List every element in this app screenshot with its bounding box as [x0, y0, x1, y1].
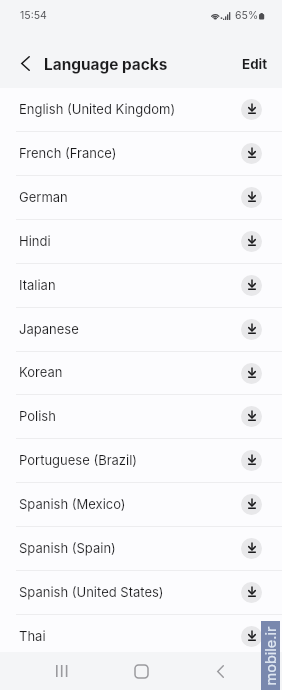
- staticText: Edit: [242, 56, 268, 72]
- staticText: Language packs: [44, 55, 168, 74]
- button[interactable]: Download Italian: [241, 275, 262, 296]
- button[interactable]: Spanish (Spain): [0, 527, 282, 570]
- staticText: Polish: [19, 408, 241, 424]
- button[interactable]: Download German: [241, 187, 262, 208]
- staticText: Hindi: [19, 233, 241, 249]
- button[interactable]: French (France): [0, 132, 282, 175]
- button[interactable]: Download Portuguese (Brazil): [241, 450, 262, 471]
- button[interactable]: Download Korean: [241, 363, 262, 384]
- button[interactable]: Download Spanish (Mexico): [241, 494, 262, 515]
- staticText: English (United Kingdom): [19, 101, 241, 117]
- button[interactable]: Download Thai: [241, 626, 262, 647]
- staticText: Spanish (Spain): [19, 540, 241, 556]
- staticText: Korean: [19, 364, 241, 380]
- button[interactable]: Download French (France): [241, 143, 262, 164]
- button[interactable]: Polish: [0, 395, 282, 438]
- button[interactable]: Korean: [0, 352, 282, 394]
- button[interactable]: Download Japanese: [241, 319, 262, 340]
- button[interactable]: Download Polish: [241, 406, 262, 427]
- button[interactable]: Spanish (United States): [0, 571, 282, 614]
- button[interactable]: Back: [200, 652, 240, 690]
- staticText: 65%: [235, 9, 259, 22]
- button[interactable]: Portuguese (Brazil): [0, 439, 282, 482]
- button[interactable]: Hindi: [0, 220, 282, 263]
- button[interactable]: Download English (United Kingdom): [241, 99, 262, 120]
- button[interactable]: Spanish (Mexico): [0, 483, 282, 526]
- button[interactable]: Thai: [0, 615, 282, 658]
- staticText: Portuguese (Brazil): [19, 452, 241, 468]
- button[interactable]: Edit: [228, 43, 282, 85]
- button[interactable]: German: [0, 176, 282, 219]
- button[interactable]: Home: [121, 652, 161, 690]
- staticText: German: [19, 189, 241, 205]
- button[interactable]: Japanese: [0, 308, 282, 351]
- staticText: mobile.ir: [261, 621, 279, 690]
- staticText: 15:54: [20, 9, 47, 22]
- staticText: French (France): [19, 145, 241, 161]
- staticText: Japanese: [19, 321, 241, 337]
- button[interactable]: Navigate up: [3, 42, 47, 84]
- button[interactable]: Download Spanish (United States): [241, 582, 262, 603]
- button[interactable]: Download Hindi: [241, 231, 262, 252]
- staticText: Italian: [19, 277, 241, 293]
- button[interactable]: English (United Kingdom): [0, 88, 282, 131]
- staticText: Spanish (Mexico): [19, 496, 241, 512]
- button[interactable]: Recent apps: [42, 652, 82, 690]
- staticText: Thai: [19, 628, 241, 644]
- staticText: Spanish (United States): [19, 584, 241, 600]
- button[interactable]: Download Spanish (Spain): [241, 538, 262, 559]
- button[interactable]: Italian: [0, 264, 282, 307]
